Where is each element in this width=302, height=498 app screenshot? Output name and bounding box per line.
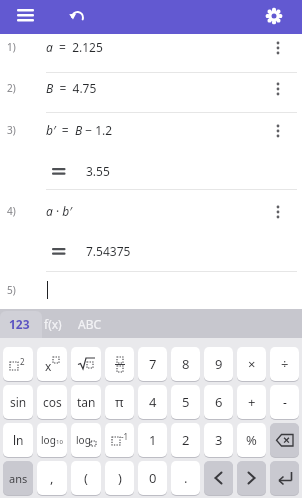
button[interactable] [204,461,233,495]
button[interactable]: 2 [3,347,33,381]
staticText: 2 [20,356,25,367]
staticText: 1) [7,40,16,54]
staticText: 0 [149,469,157,487]
staticText: sin [10,394,27,410]
staticText: 7 [149,355,157,373]
button[interactable] [271,123,285,139]
button[interactable]: cos [37,385,67,419]
button[interactable]: tan [71,385,101,419]
staticText: 3.55 [86,163,110,179]
staticText: + [248,393,256,411]
button[interactable] [270,461,299,495]
staticText: cos [43,394,62,410]
staticText: 10 [56,438,63,446]
button[interactable]: + [237,385,266,419]
button[interactable]: 3) [0,113,302,189]
staticText: 5 [182,393,190,411]
button[interactable]: , [37,461,67,495]
staticText: × [248,355,256,373]
button[interactable] [271,204,285,220]
staticText: ( [84,469,88,487]
button[interactable] [265,7,283,25]
staticText: B = 4.75 [46,80,97,96]
staticText: ) [118,469,122,487]
button[interactable] [270,423,299,457]
button[interactable]: 2 [171,423,200,457]
staticText: 5) [7,283,16,297]
button[interactable]: ÷ [270,347,299,381]
staticText: log [41,433,56,447]
button[interactable]: 4 [138,385,167,419]
staticText: 7.54375 [86,243,131,259]
button[interactable]: -1 [105,423,134,457]
staticText: π [115,393,124,411]
button[interactable]: ) [105,461,134,495]
staticText: ln [13,432,24,448]
staticText: - [283,394,287,410]
staticText: 3 [215,431,223,449]
button[interactable]: 5) [0,272,302,309]
staticText: a = 2.125 [46,39,103,55]
staticText: tan [77,394,96,410]
button[interactable] [237,461,266,495]
button[interactable]: . [171,461,200,495]
button[interactable]: 123 [9,316,30,332]
button[interactable] [17,9,34,22]
staticText: log [76,433,91,447]
button[interactable]: ans [3,461,33,495]
staticText: 8 [182,355,190,373]
staticText: ÷ [281,355,289,373]
button[interactable] [68,9,86,23]
button[interactable]: log [37,423,67,457]
button[interactable]: 1 [138,423,167,457]
staticText: % [246,431,257,449]
staticText: 1 [149,431,157,449]
button[interactable] [105,347,134,381]
button[interactable]: 6 [204,385,233,419]
staticText: , [50,469,54,487]
staticText: a · b′ [46,203,72,219]
button[interactable]: 9 [204,347,233,381]
button[interactable]: ln [3,423,33,457]
button[interactable]: 7 [138,347,167,381]
staticText: 2 [182,431,190,449]
button[interactable] [271,81,285,97]
button[interactable]: 5 [171,385,200,419]
button[interactable]: ( [71,461,101,495]
staticText: b′ = B − 1.2 [46,122,113,138]
button[interactable]: % [237,423,266,457]
staticText: 2) [7,81,16,95]
button[interactable]: 1) [0,34,302,72]
button[interactable]: 2) [0,73,302,112]
staticText: 6 [215,393,223,411]
button[interactable]: log [71,423,101,457]
button[interactable]: 0 [138,461,167,495]
button[interactable]: x [37,347,67,381]
button[interactable]: 4) [0,190,302,271]
staticText: 4) [7,204,16,218]
staticText: -1 [121,431,129,442]
button[interactable] [71,347,101,381]
button[interactable]: π [105,385,134,419]
button[interactable]: - [270,385,299,419]
staticText: ans [9,471,28,486]
staticText: . [184,469,188,487]
button[interactable]: sin [3,385,33,419]
staticText: ABC [78,316,102,332]
button[interactable] [271,40,285,56]
button[interactable]: × [237,347,266,381]
button[interactable]: ABC [78,316,102,332]
button[interactable]: f(x) [44,316,62,332]
button[interactable]: 8 [171,347,200,381]
button[interactable]: 3 [204,423,233,457]
staticText: f(x) [44,316,62,332]
staticText: 4 [149,393,157,411]
staticText: 3) [7,123,16,137]
staticText: 123 [9,316,30,332]
staticText: x [45,358,52,373]
staticText: 9 [215,355,223,373]
